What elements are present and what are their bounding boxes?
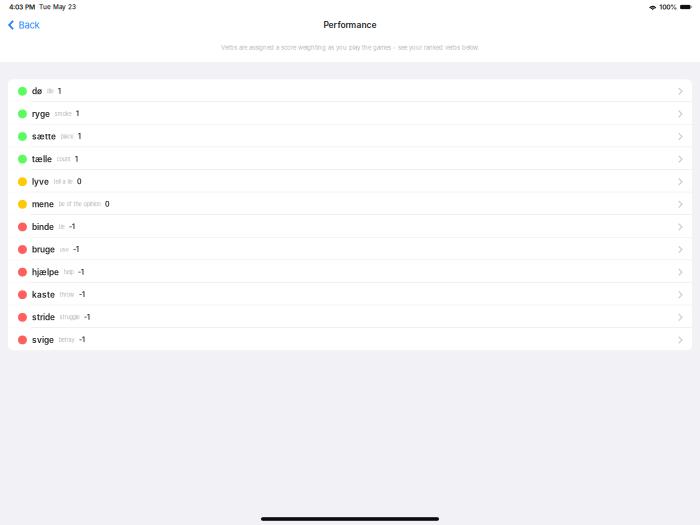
staticText: tælle xyxy=(32,154,52,164)
staticText: 1 xyxy=(75,155,78,163)
staticText: lyve xyxy=(32,177,49,187)
staticText: stride xyxy=(32,312,55,322)
staticText: 0 xyxy=(105,200,110,208)
button[interactable]: mene xyxy=(8,192,692,214)
staticText: bruge xyxy=(32,244,55,254)
button[interactable]: svige xyxy=(8,328,692,350)
staticText: sætte xyxy=(32,131,56,141)
staticText: die xyxy=(46,88,53,95)
staticText: 100% xyxy=(659,3,677,11)
staticText: -1 xyxy=(79,290,85,299)
staticText: struggle xyxy=(59,314,79,321)
staticText: dø xyxy=(32,86,42,96)
button[interactable]: binde xyxy=(8,215,692,237)
staticText: tell a lie xyxy=(53,178,72,185)
staticText: -1 xyxy=(78,268,84,276)
staticText: help xyxy=(63,269,73,275)
button[interactable]: bruge xyxy=(8,238,692,260)
staticText: Tue May 23 xyxy=(39,3,76,11)
staticText: count xyxy=(56,156,70,162)
staticText: Verbs are assigned a score weighting as … xyxy=(221,44,479,51)
staticText: hjælpe xyxy=(32,267,59,277)
staticText: -1 xyxy=(79,336,85,344)
staticText: smoke xyxy=(54,110,71,117)
button[interactable]: stride xyxy=(8,305,692,327)
staticText: -1 xyxy=(69,223,75,231)
staticText: place xyxy=(60,133,73,140)
staticText: 1 xyxy=(76,110,79,118)
staticText: 1 xyxy=(58,87,61,95)
staticText: use xyxy=(59,246,68,253)
staticText: be of the opinion xyxy=(58,201,100,208)
button[interactable]: kaste xyxy=(8,283,692,305)
button[interactable]: Back xyxy=(0,15,39,35)
staticText: binde xyxy=(32,222,54,232)
staticText: betray xyxy=(58,336,74,343)
button[interactable]: hjælpe xyxy=(8,260,692,282)
button[interactable]: tælle xyxy=(8,147,692,169)
staticText: 1 xyxy=(78,132,81,141)
staticText: kaste xyxy=(32,290,55,300)
staticText: 4:03 PM xyxy=(9,3,35,11)
staticText: mene xyxy=(32,199,54,209)
staticText: -1 xyxy=(84,313,90,321)
button[interactable]: sætte xyxy=(8,125,692,147)
staticText: tie xyxy=(58,223,64,230)
button[interactable]: lyve xyxy=(8,170,692,192)
button[interactable]: ryge xyxy=(8,102,692,124)
staticText: throw xyxy=(59,291,74,298)
staticText: Performance xyxy=(323,20,376,30)
staticText: -1 xyxy=(73,245,79,254)
staticText: svige xyxy=(32,335,54,345)
staticText: ryge xyxy=(32,109,50,119)
staticText: Back xyxy=(18,19,39,31)
staticText: 0 xyxy=(77,177,82,186)
button[interactable]: dø xyxy=(8,79,692,101)
